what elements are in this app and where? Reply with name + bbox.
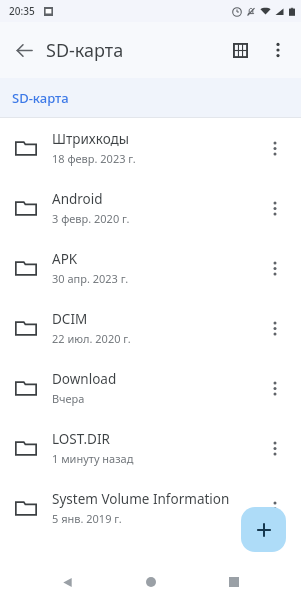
staticText: 20:35 — [9, 4, 35, 18]
staticText: 3 февр. 2020 г. — [52, 211, 130, 226]
button[interactable]: Grid view — [221, 31, 259, 69]
button[interactable]: Recents — [217, 565, 251, 599]
button[interactable]: SD-карта — [8, 85, 73, 111]
staticText: DCIM — [52, 310, 88, 328]
button[interactable]: APK — [0, 238, 301, 298]
button[interactable]: Item options — [253, 366, 297, 410]
button[interactable]: Home — [134, 565, 168, 599]
staticText: 5 янв. 2019 г. — [52, 511, 122, 526]
button[interactable]: Item options — [253, 126, 297, 170]
staticText: 18 февр. 2023 г. — [52, 151, 136, 166]
button[interactable]: Item options — [253, 306, 297, 350]
button[interactable]: Item options — [253, 486, 297, 530]
button[interactable]: Android — [0, 178, 301, 238]
button[interactable]: More options — [259, 31, 297, 69]
staticText: System Volume Information — [52, 490, 230, 508]
staticText: LOST.DIR — [52, 430, 110, 448]
button[interactable]: Back — [6, 32, 42, 68]
staticText: Download — [52, 370, 117, 388]
staticText: Штрихкоды — [52, 130, 129, 148]
button[interactable]: System Volume Information — [0, 478, 301, 538]
staticText: 1 минуту назад — [52, 451, 134, 466]
button[interactable]: LOST.DIR — [0, 418, 301, 478]
button[interactable]: Add — [241, 507, 286, 552]
button[interactable]: Item options — [253, 246, 297, 290]
staticText: 22 июл. 2020 г. — [52, 331, 131, 346]
button[interactable]: DCIM — [0, 298, 301, 358]
staticText: 30 апр. 2023 г. — [52, 271, 129, 286]
staticText: APK — [52, 250, 78, 268]
staticText: Вчера — [52, 391, 85, 406]
button[interactable]: Item options — [253, 426, 297, 470]
button[interactable]: Item options — [253, 186, 297, 230]
button[interactable]: Download — [0, 358, 301, 418]
staticText: SD-карта — [12, 89, 69, 107]
staticText: SD-карта — [46, 38, 124, 63]
button[interactable]: Back — [50, 565, 84, 599]
staticText: Android — [52, 190, 103, 208]
button[interactable]: Штрихкоды — [0, 118, 301, 178]
